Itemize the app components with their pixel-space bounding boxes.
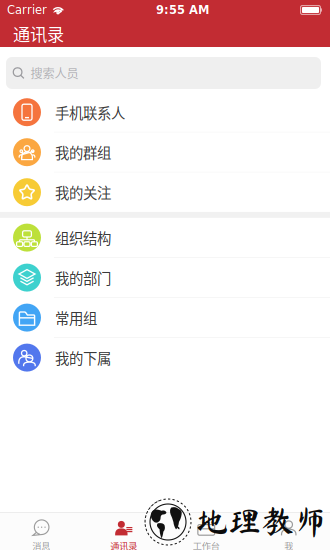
staticText: 9:55 AM xyxy=(156,3,209,17)
button[interactable]: 组织结构 xyxy=(0,218,330,257)
staticText: 常用组 xyxy=(55,307,97,328)
button[interactable]: 消息 xyxy=(0,513,82,550)
button[interactable]: 工作台 xyxy=(165,513,247,550)
staticText: 我的关注 xyxy=(55,182,111,203)
button[interactable]: 手机联系人 xyxy=(0,92,330,132)
staticText: 手机联系人 xyxy=(55,102,125,123)
button[interactable]: 我 xyxy=(247,513,330,550)
staticText: 我的部门 xyxy=(55,267,111,288)
staticText: 我的下属 xyxy=(55,347,111,368)
staticText: 工作台 xyxy=(193,539,220,550)
button[interactable]: 常用组 xyxy=(0,298,330,337)
button[interactable]: 通讯录 xyxy=(82,513,165,550)
staticText: 地理教师 xyxy=(195,504,327,537)
staticText: 搜索人员 xyxy=(30,64,78,82)
button[interactable]: 我的部门 xyxy=(0,258,330,297)
staticText: 通讯录 xyxy=(13,21,64,46)
staticText: 通讯录 xyxy=(110,539,137,550)
staticText: 组织结构 xyxy=(55,227,111,248)
button[interactable]: 我的下属 xyxy=(0,338,330,377)
staticText: 我的群组 xyxy=(55,142,111,163)
staticText: Carrier xyxy=(7,3,47,17)
button[interactable]: 我的群组 xyxy=(0,132,330,172)
button[interactable]: 我的关注 xyxy=(0,172,330,212)
staticText: 我 xyxy=(284,539,293,550)
staticText: 消息 xyxy=(32,539,50,550)
